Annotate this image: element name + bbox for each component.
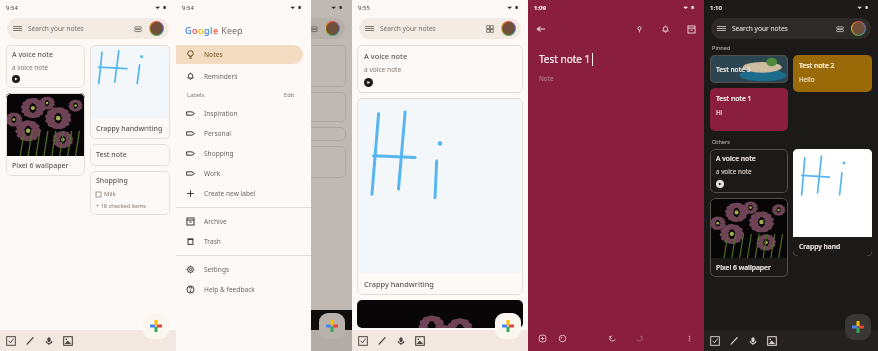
button[interactable]: Account — [150, 22, 163, 35]
staticText: e — [213, 24, 219, 36]
staticText: Labels — [187, 91, 205, 99]
button[interactable]: Help & feedback — [176, 280, 303, 299]
staticText: g — [204, 24, 210, 36]
button[interactable]: Open navigation menu — [364, 23, 375, 34]
staticText: + 18 checked items — [96, 202, 147, 210]
staticText: A voice note — [716, 154, 756, 163]
staticText: Personal — [204, 129, 232, 138]
staticText: Test note 3 — [716, 65, 751, 74]
button[interactable]: Open navigation menu — [716, 23, 727, 34]
staticText: Work — [204, 169, 221, 178]
button[interactable]: A voice note — [357, 45, 523, 93]
button[interactable]: Undo — [607, 333, 618, 344]
button[interactable]: New image note — [766, 335, 778, 347]
button[interactable]: Account — [502, 22, 515, 35]
staticText: Test note — [96, 150, 127, 160]
button[interactable]: Test note 1 — [710, 88, 788, 131]
staticText: Crappy handwriting — [364, 279, 434, 289]
button[interactable]: Crappy handwriting — [90, 45, 170, 139]
staticText: Search your notes — [380, 24, 436, 33]
button[interactable]: Account — [852, 22, 865, 35]
staticText: l — [210, 24, 213, 36]
staticText: Search your notes — [28, 24, 84, 33]
button[interactable]: Create new label — [176, 184, 303, 203]
staticText: Reminders — [204, 72, 238, 81]
button[interactable]: New drawing — [376, 335, 388, 347]
button[interactable]: Crappy handwriting — [357, 98, 523, 295]
button[interactable]: Trash — [176, 232, 303, 251]
button[interactable]: Shopping — [176, 144, 303, 163]
button[interactable]: Settings — [176, 260, 303, 279]
button[interactable]: Archive — [686, 24, 697, 35]
staticText: Create new label — [204, 189, 256, 198]
button[interactable]: New image note — [62, 335, 74, 347]
button[interactable]: Create new note — [495, 313, 521, 339]
button[interactable]: Notes — [176, 45, 303, 64]
button[interactable]: New voice note — [747, 335, 759, 347]
button[interactable]: Pixel 6 wallpaper — [6, 93, 85, 176]
button[interactable]: Shopping — [90, 171, 170, 215]
staticText: Milk — [104, 190, 116, 198]
staticText: Help & feedback — [204, 285, 255, 294]
staticText: Search your notes — [732, 24, 788, 33]
button[interactable]: Toggle list view — [133, 24, 143, 34]
button[interactable]: Open navigation menu — [359, 18, 521, 39]
staticText: Hello — [799, 75, 815, 84]
button[interactable]: Archive — [176, 212, 303, 231]
staticText: a voice note — [12, 63, 49, 72]
staticText: Inspiration — [204, 109, 238, 118]
staticText: Shopping — [204, 149, 234, 158]
button[interactable]: Reminder — [660, 24, 671, 35]
button[interactable]: Test note 3 — [710, 55, 788, 83]
button[interactable]: Edit — [284, 91, 295, 99]
button[interactable]: Open navigation menu — [7, 18, 169, 39]
button[interactable]: New drawing — [728, 335, 740, 347]
button[interactable]: Pin note — [634, 24, 645, 35]
button[interactable]: Toggle list view — [485, 24, 495, 34]
staticText: a voice note — [364, 65, 402, 74]
button[interactable]: New image note — [414, 335, 426, 347]
button[interactable]: A voice note — [710, 149, 788, 193]
button[interactable]: Add — [537, 333, 548, 344]
button[interactable]: Open navigation menu — [12, 23, 23, 34]
staticText: Pixel 6 wallpaper — [12, 161, 69, 171]
button[interactable]: Change colour — [557, 333, 568, 344]
staticText: o — [192, 24, 198, 36]
button[interactable]: New list — [5, 335, 17, 347]
button[interactable]: Open navigation menu — [711, 18, 871, 39]
button[interactable]: Redo — [634, 333, 645, 344]
button[interactable]: Work — [176, 164, 303, 183]
button[interactable]: Pixel 6 wallpaper — [710, 198, 788, 277]
button[interactable]: Test note — [90, 144, 170, 166]
staticText: 9:54 — [182, 4, 194, 12]
button[interactable]: New drawing — [24, 335, 36, 347]
button[interactable]: Inspiration — [176, 104, 303, 123]
button[interactable] — [357, 300, 523, 328]
staticText: Others — [712, 138, 730, 146]
staticText: 1:10 — [710, 4, 722, 12]
button[interactable]: New list — [357, 335, 369, 347]
button[interactable]: Reminders — [176, 67, 303, 86]
staticText: Crappy hand — [799, 242, 841, 251]
button[interactable]: More options — [684, 333, 695, 344]
staticText: A voice note — [364, 51, 408, 61]
staticText: Keep — [219, 24, 243, 36]
button[interactable]: New voice note — [395, 335, 407, 347]
button[interactable]: New list — [709, 335, 721, 347]
staticText: 9:55 — [358, 4, 370, 12]
staticText: Hi — [716, 108, 723, 117]
staticText: Crappy handwriting — [96, 124, 163, 134]
button[interactable]: Toggle list view — [835, 24, 845, 34]
staticText: 1:09 — [534, 4, 546, 12]
staticText: 9:54 — [6, 4, 18, 12]
button[interactable]: New voice note — [43, 335, 55, 347]
button[interactable]: Create new note — [845, 314, 871, 340]
button[interactable]: Back — [535, 23, 547, 35]
button[interactable]: Crappy hand — [793, 149, 872, 256]
button[interactable]: Personal — [176, 124, 303, 143]
button[interactable]: Create new note — [143, 313, 169, 339]
button[interactable]: A voice note — [6, 45, 85, 88]
staticText: Notes — [204, 50, 223, 59]
button[interactable]: Test note 2 — [793, 55, 872, 92]
